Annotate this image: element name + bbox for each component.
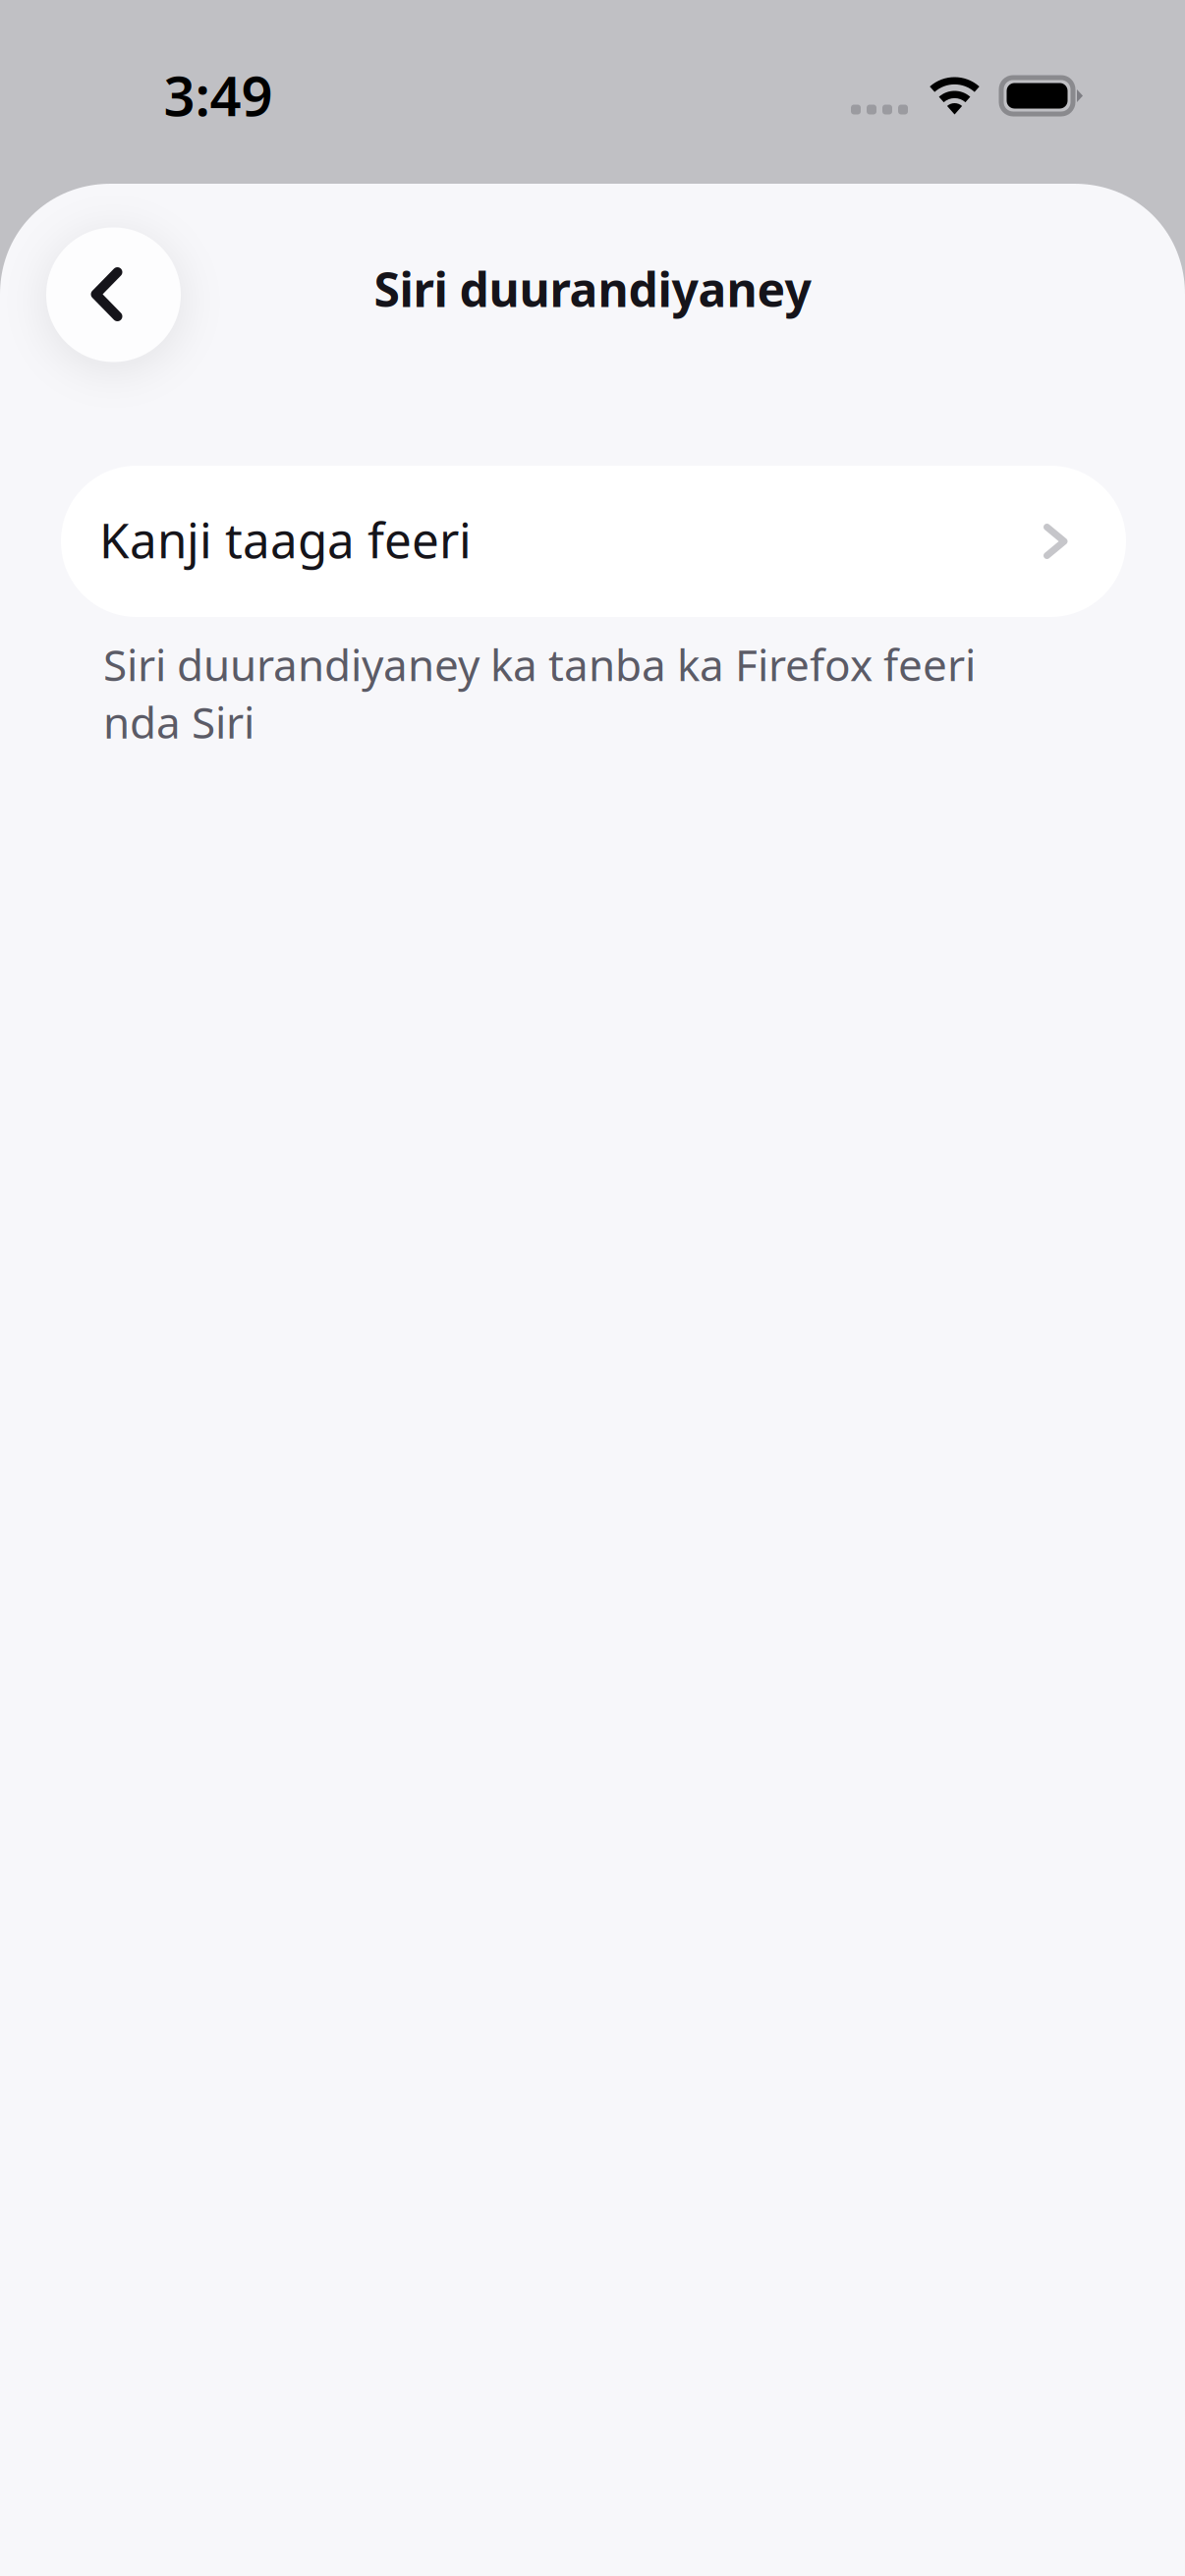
- staticText: Siri duurandiyaney ka tanba ka Firefox f…: [103, 636, 976, 750]
- staticText: Kanji taaga feeri: [99, 507, 472, 571]
- button[interactable]: Kanji taaga feeri: [61, 466, 1126, 617]
- staticText: 3:49: [164, 58, 273, 131]
- button[interactable]: Back: [46, 227, 181, 362]
- staticText: Siri duurandiyaney: [374, 258, 811, 320]
